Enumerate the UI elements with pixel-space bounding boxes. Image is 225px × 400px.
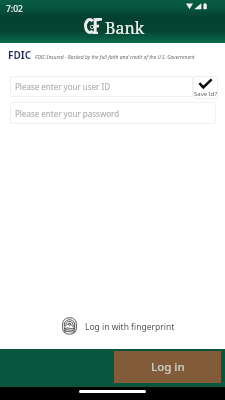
button[interactable]: Log in	[114, 351, 221, 383]
staticText: Please enter your user ID	[15, 81, 111, 92]
staticText: Please enter your password	[15, 108, 120, 119]
staticText: Log in with fingerprint	[85, 321, 175, 333]
button[interactable]: Log in with fingerprint	[61, 317, 175, 335]
staticText: 7:02	[6, 3, 23, 15]
button[interactable]: Please enter your password	[10, 102, 216, 124]
staticText: Save Id?	[194, 90, 217, 98]
staticText: FDIC-Insured - Backed by the full faith …	[35, 54, 195, 61]
staticText: Log in	[151, 359, 185, 375]
staticText: FDIC	[8, 48, 32, 62]
button[interactable]: Please enter your user ID	[10, 76, 193, 97]
button[interactable]: Save Id	[193, 76, 218, 99]
staticText: Bank	[105, 17, 145, 39]
